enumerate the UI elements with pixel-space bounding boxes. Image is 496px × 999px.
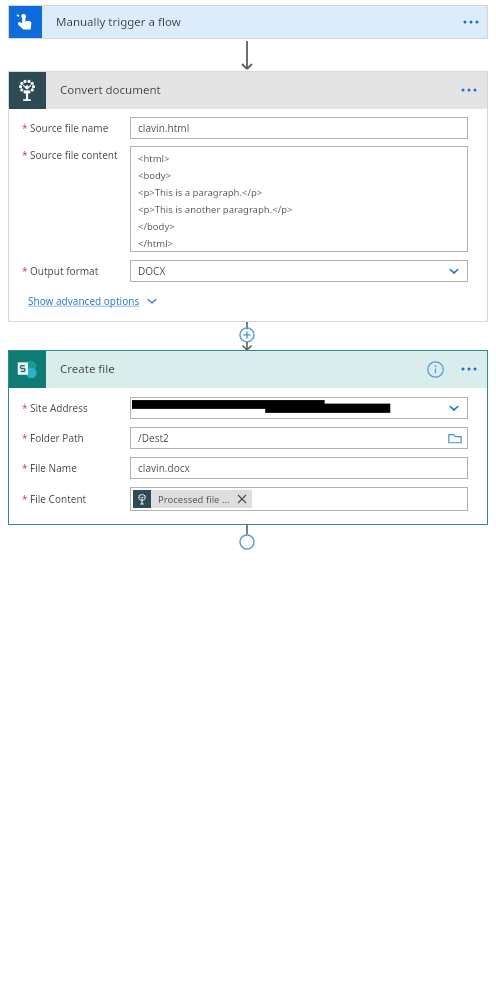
other: Open dropdown	[446, 263, 462, 279]
staticText: <p>This is another paragraph.</p>	[138, 203, 293, 216]
button[interactable]: clavin.html	[130, 117, 468, 139]
button[interactable]: More commands	[454, 5, 488, 39]
button[interactable]: Information	[420, 354, 450, 384]
button[interactable]: Remove	[236, 493, 248, 505]
staticText: DOCX	[138, 264, 166, 278]
staticText: clavin.docx	[138, 461, 190, 475]
other: Open dropdown	[446, 400, 462, 416]
staticText: File Name	[30, 461, 77, 475]
staticText: *	[22, 264, 28, 278]
other: Browse folder	[448, 431, 462, 445]
button[interactable]: Convert document	[8, 71, 488, 109]
button[interactable]: More commands	[450, 71, 488, 109]
staticText: Processed file ...	[158, 493, 230, 506]
staticText: <html>	[138, 152, 170, 165]
staticText: Folder Path	[30, 431, 84, 445]
staticText: Create file	[60, 361, 115, 377]
button[interactable]: /Dest2	[130, 427, 468, 449]
button[interactable]: Create file	[8, 350, 488, 388]
button[interactable]: Open dropdown	[130, 397, 468, 419]
staticText: *	[22, 431, 28, 445]
button[interactable]: DOCX	[130, 260, 468, 282]
button[interactable]: Show advanced options	[28, 294, 158, 308]
staticText: /Dest2	[138, 431, 169, 445]
button[interactable]: Manually trigger a flow	[8, 5, 488, 39]
staticText: <p>This is a paragraph.</p>	[138, 186, 263, 199]
staticText: *	[22, 401, 28, 415]
staticText: *	[22, 121, 28, 135]
staticText: Site Address	[30, 401, 88, 415]
button[interactable]: More commands	[450, 350, 488, 388]
staticText: </html>	[138, 237, 174, 250]
staticText: <body>	[138, 169, 172, 182]
button[interactable]: Processed file ...	[130, 487, 468, 511]
button[interactable]: clavin.docx	[130, 457, 468, 479]
staticText: Source file name	[30, 121, 109, 135]
button[interactable]: Processed file ...	[133, 490, 252, 508]
staticText: clavin.html	[138, 121, 190, 135]
staticText: Convert document	[60, 82, 161, 98]
staticText: Source file content	[30, 148, 118, 162]
staticText: </body>	[138, 220, 175, 233]
staticText: *	[22, 492, 28, 506]
staticText: Output format	[30, 264, 99, 278]
staticText: File Content	[30, 492, 87, 506]
staticText: *	[22, 148, 28, 162]
button[interactable]: <html>	[130, 146, 468, 252]
staticText: Manually trigger a flow	[56, 14, 181, 30]
staticText: Show advanced options	[28, 294, 140, 308]
staticText: *	[22, 461, 28, 475]
